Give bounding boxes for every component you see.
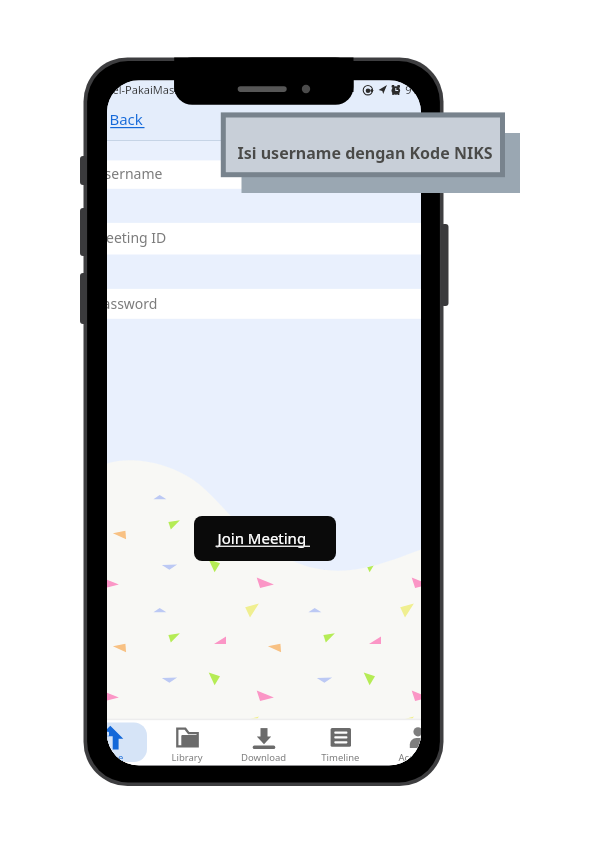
button[interactable]: Back [110,110,150,132]
button[interactable]: Username field [107,160,421,189]
button[interactable]: Account [359,719,421,766]
button[interactable]: Timeline [296,719,359,766]
button[interactable]: Download [233,719,296,766]
button[interactable]: Password field [107,288,421,319]
button[interactable]: Home [107,719,170,766]
button[interactable]: Library [170,719,233,766]
button[interactable]: Meeting ID field [107,222,421,254]
button[interactable]: Join Meeting [194,516,336,561]
